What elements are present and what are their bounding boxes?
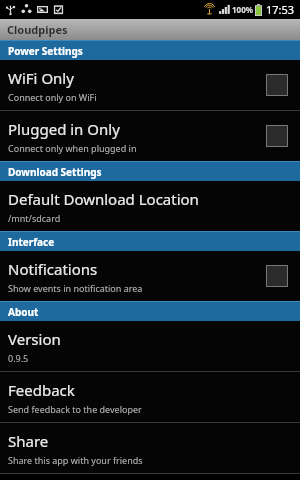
staticText: Version	[8, 329, 61, 349]
staticText: Power Settings	[8, 44, 83, 58]
staticText: Feedback	[8, 380, 75, 400]
button[interactable]: Version	[0, 321, 300, 371]
staticText: Send feedback to the developer	[8, 403, 142, 415]
button[interactable]: Default Download Location	[0, 181, 300, 231]
staticText: Share	[8, 431, 49, 451]
staticText: 100%	[232, 4, 253, 15]
staticText: Download Settings	[8, 165, 102, 179]
staticText: 17:53	[266, 2, 295, 17]
staticText: WiFi Only	[8, 68, 74, 88]
staticText: Notifications	[8, 259, 98, 279]
button[interactable]: Toggle WiFi Only	[266, 74, 288, 96]
button[interactable]: Notifications	[0, 251, 300, 301]
staticText: Show events in notification area	[8, 282, 143, 294]
staticText: Connect only on WiFi	[8, 91, 97, 103]
staticText: Cloudpipes	[7, 22, 68, 37]
button[interactable]: Toggle Plugged in Only	[266, 125, 288, 147]
button[interactable]: WiFi Only	[0, 60, 300, 110]
staticText: About	[8, 305, 39, 319]
button[interactable]: Share	[0, 423, 300, 473]
staticText: /mnt/sdcard	[8, 212, 61, 224]
button[interactable]: Toggle Notifications	[266, 265, 288, 287]
staticText: Share this app with your friends	[8, 454, 143, 466]
staticText: Default Download Location	[8, 189, 199, 209]
button[interactable]: Feedback	[0, 372, 300, 422]
staticText: 0.9.5	[8, 352, 29, 364]
staticText: Connect only when plugged in	[8, 142, 137, 154]
staticText: Plugged in Only	[8, 119, 120, 139]
button[interactable]: Plugged in Only	[0, 111, 300, 161]
staticText: Interface	[8, 235, 55, 249]
